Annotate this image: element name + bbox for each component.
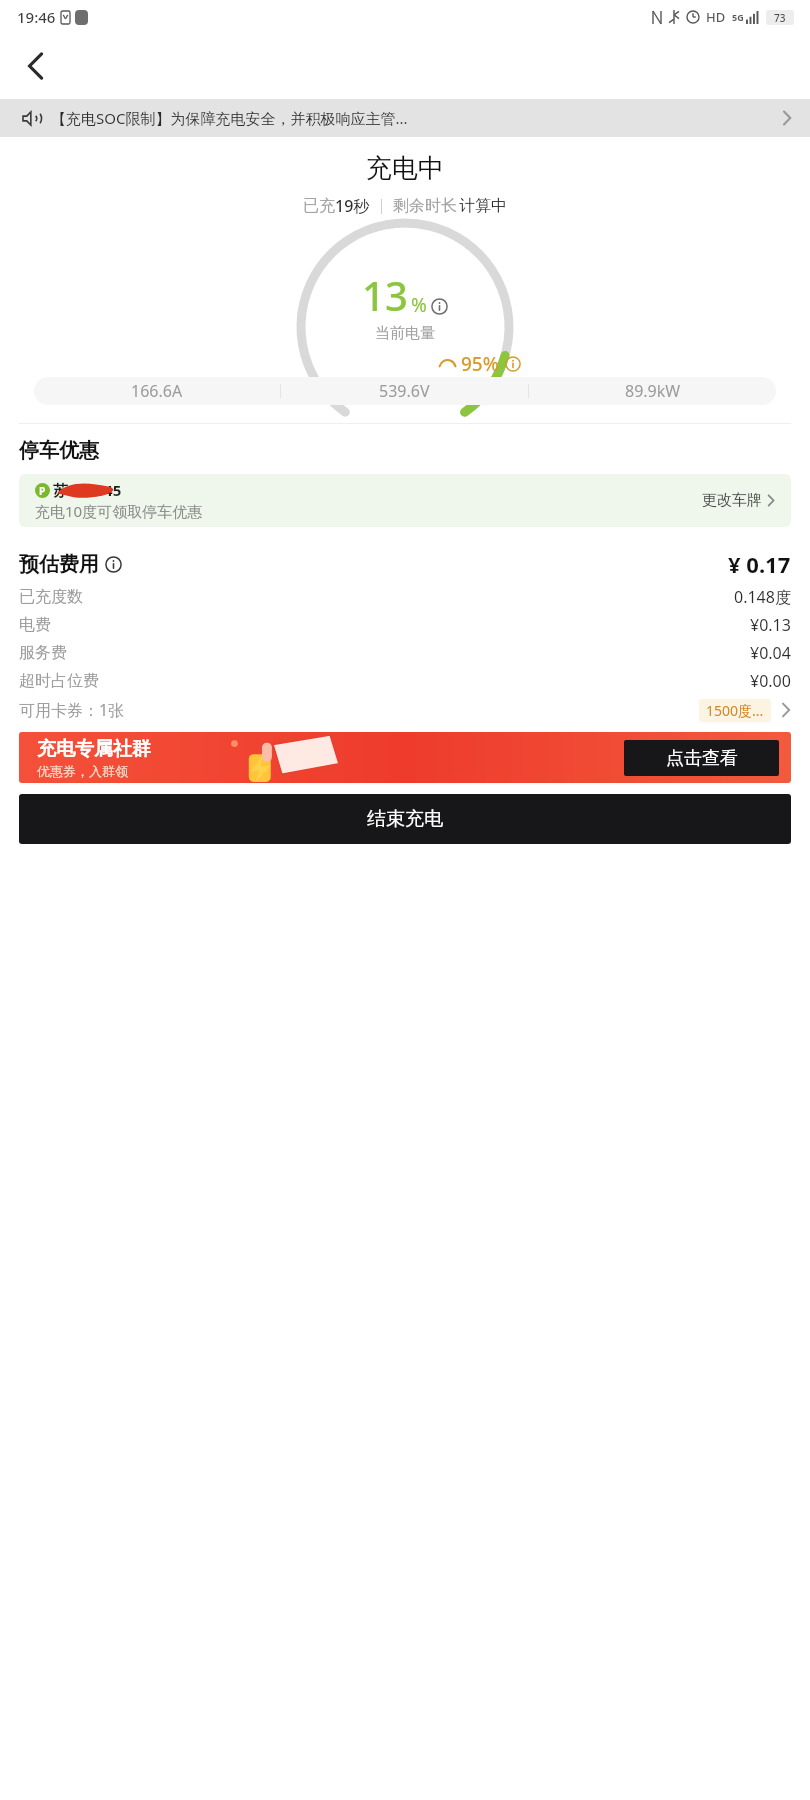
button[interactable]: 电量说明 <box>431 298 448 315</box>
staticText: 当前电量 <box>375 324 435 343</box>
button[interactable]: 费用说明 <box>105 556 122 573</box>
button[interactable]: 可用卡券：1张 <box>19 697 791 723</box>
staticText: ¥0.13 <box>750 614 791 636</box>
staticText: 超时占位费 <box>19 671 99 691</box>
staticText: 1500度... <box>706 701 764 720</box>
staticText: 服务费 <box>19 643 67 663</box>
staticText: 点击查看 <box>666 747 738 770</box>
staticText: 166.6A <box>131 380 183 402</box>
staticText: 充电中 <box>0 152 810 185</box>
staticText: 19:46 <box>17 7 56 27</box>
button[interactable]: 结束充电 <box>19 794 791 844</box>
staticText: 13 <box>362 268 408 322</box>
button[interactable]: 【充电SOC限制】为保障充电安全，并积极响应主管... <box>0 99 810 137</box>
staticText: 苏A12345 <box>53 480 122 500</box>
staticText: 可用卡券：1张 <box>19 699 125 721</box>
staticText: ¥0.04 <box>750 642 791 664</box>
button[interactable]: 上限说明 <box>505 356 521 372</box>
staticText: 已充 <box>303 196 335 216</box>
button[interactable]: 充电专属社群 <box>19 732 791 783</box>
staticText: 预估费用 <box>19 552 99 577</box>
button[interactable]: P <box>19 474 791 527</box>
staticText: HD <box>706 8 726 26</box>
staticText: 剩余时长 <box>393 196 457 216</box>
staticText: ¥ 0.17 <box>728 549 791 579</box>
staticText: 结束充电 <box>367 807 443 831</box>
staticText: 充电10度可领取停车优惠 <box>35 501 203 521</box>
staticText: 【充电SOC限制】为保障充电安全，并积极响应主管... <box>51 108 774 128</box>
staticText: 0.148度 <box>734 586 791 608</box>
staticText: % <box>411 292 427 318</box>
staticText: 停车优惠 <box>19 438 99 463</box>
staticText: 已充度数 <box>19 587 83 607</box>
button[interactable]: Back <box>10 40 62 92</box>
staticText: 95% <box>461 351 499 377</box>
staticText: 89.9kW <box>625 380 681 402</box>
staticText: 5G <box>732 11 744 23</box>
staticText: P <box>39 484 46 498</box>
staticText: 优惠券，入群领 <box>37 763 128 779</box>
staticText: 73 <box>774 11 786 25</box>
staticText: 电费 <box>19 615 51 635</box>
staticText: ¥0.00 <box>750 670 791 692</box>
staticText: 更改车牌 <box>702 491 762 510</box>
button[interactable]: 点击查看 <box>624 740 779 776</box>
staticText: 充电专属社群 <box>37 737 151 761</box>
staticText: 539.6V <box>379 380 430 402</box>
staticText: 计算中 <box>459 196 507 216</box>
staticText: 19秒 <box>335 195 370 217</box>
